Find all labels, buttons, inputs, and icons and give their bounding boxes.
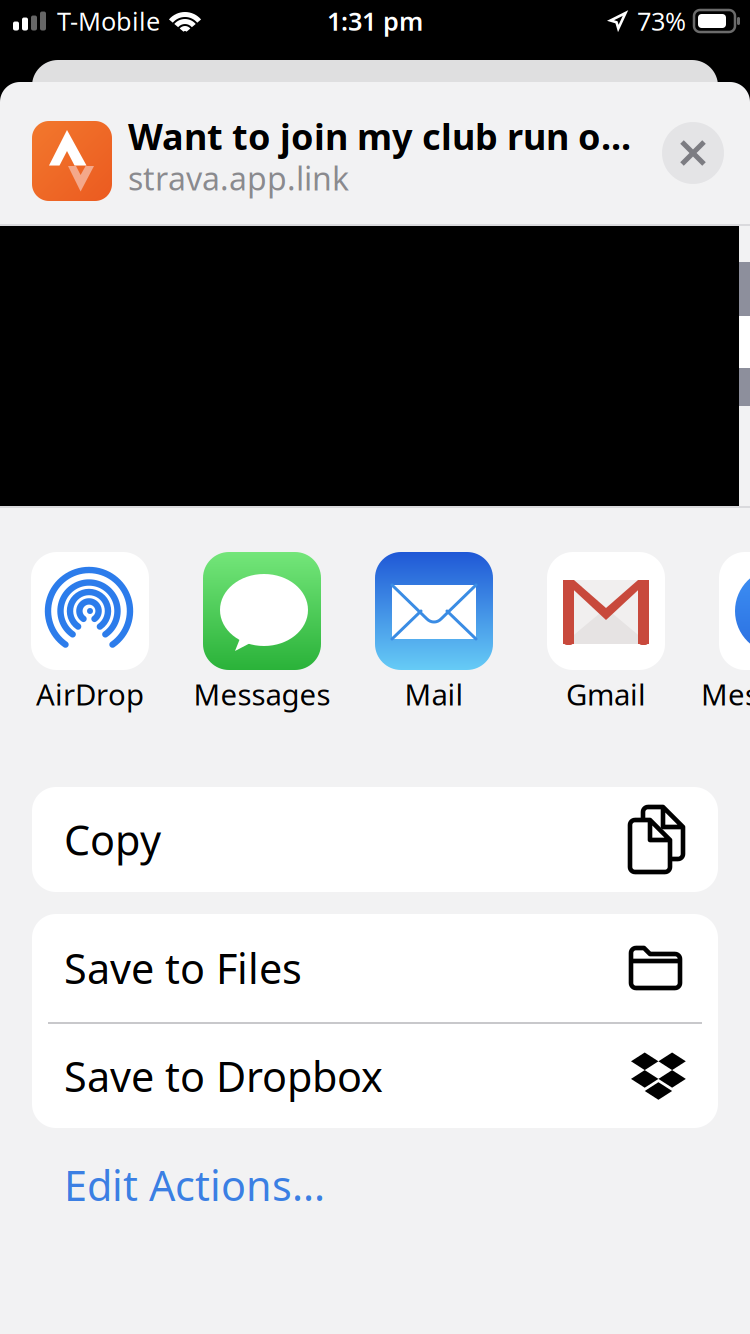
staticText: Want to join my club run o... bbox=[128, 112, 631, 160]
button[interactable]: Save to Files bbox=[32, 914, 718, 1022]
staticText: 73% bbox=[637, 4, 686, 38]
button[interactable]: Close bbox=[662, 122, 724, 184]
staticText: Gmail bbox=[566, 674, 646, 713]
button[interactable]: Copy bbox=[32, 787, 718, 892]
staticText: Save to Files bbox=[64, 941, 302, 995]
button[interactable]: Save to Dropbox bbox=[32, 1024, 718, 1128]
staticText: 1:31 pm bbox=[327, 4, 423, 38]
staticText: Mail bbox=[404, 674, 463, 713]
button[interactable]: Edit Actions... bbox=[0, 1146, 750, 1224]
button[interactable]: Gmail bbox=[548, 552, 664, 716]
button[interactable]: Messenger bbox=[720, 552, 750, 716]
staticText: Copy bbox=[64, 812, 161, 867]
button[interactable]: AirDrop bbox=[32, 552, 148, 716]
staticText: Messenger bbox=[701, 674, 750, 713]
staticText: Save to Dropbox bbox=[64, 1049, 383, 1103]
button[interactable]: Mail bbox=[376, 552, 492, 716]
staticText: strava.app.link bbox=[128, 157, 349, 199]
staticText: AirDrop bbox=[36, 674, 144, 713]
staticText: T-Mobile bbox=[57, 4, 160, 38]
staticText: Messages bbox=[193, 674, 330, 713]
staticText: Edit Actions... bbox=[64, 1158, 325, 1212]
button[interactable]: Messages bbox=[204, 552, 320, 716]
